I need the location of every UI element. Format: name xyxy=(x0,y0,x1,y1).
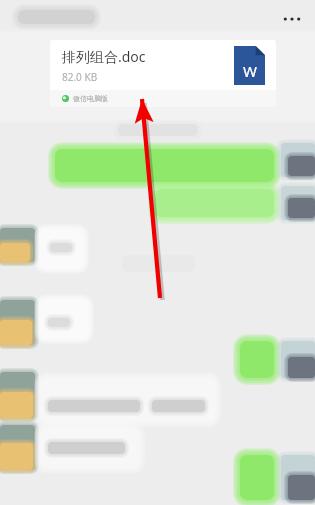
staticText: 排列组合.doc xyxy=(62,47,146,66)
button[interactable]: More options xyxy=(276,7,308,31)
staticText: W xyxy=(243,61,257,81)
staticText: 微信电脑版 xyxy=(73,94,108,103)
staticText: 82.0 KB xyxy=(62,70,98,84)
button[interactable]: 排列组合.doc xyxy=(50,40,276,107)
